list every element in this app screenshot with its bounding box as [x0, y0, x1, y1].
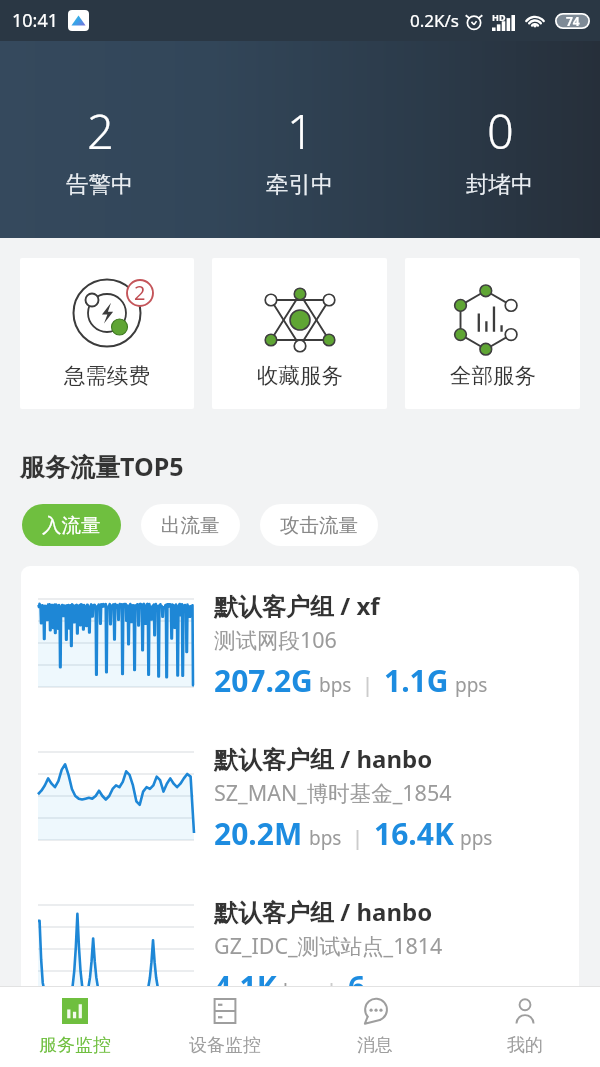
staticText: 4.1K	[214, 966, 277, 1007]
staticText: 默认客户组 / hanbo	[214, 742, 433, 775]
button[interactable]: 服务监控	[0, 987, 150, 1067]
button[interactable]: 消息	[300, 987, 450, 1067]
button[interactable]: 收藏服务	[212, 258, 387, 409]
staticText: |	[362, 671, 374, 698]
staticText: 默认客户组 / hanbo	[214, 895, 433, 928]
staticText: 6	[348, 966, 366, 1007]
staticText: |	[326, 977, 338, 1004]
staticText: 测试网段106	[214, 625, 337, 654]
staticText: 10:41	[12, 8, 59, 33]
staticText: 2	[134, 279, 146, 306]
staticText: 全部服务	[450, 362, 536, 389]
staticText: HD	[492, 11, 506, 23]
staticText: bps	[309, 825, 342, 851]
button[interactable]: 默认客户组 / xf	[21, 566, 579, 719]
staticText: 出流量	[161, 513, 220, 538]
button[interactable]: 攻击流量	[260, 504, 378, 546]
staticText: 0.2K/s	[410, 9, 459, 32]
staticText: 设备监控	[189, 1034, 261, 1057]
staticText: bps	[319, 672, 352, 698]
button[interactable]: 设备监控	[150, 987, 300, 1067]
staticText: 我的	[507, 1034, 543, 1057]
staticText: 封堵中	[466, 170, 534, 198]
staticText: 告警中	[66, 170, 134, 198]
staticText: 默认客户组 / xf	[214, 589, 380, 622]
staticText: pps	[372, 978, 405, 1004]
staticText: 服务流量TOP5	[20, 449, 184, 483]
button[interactable]: 入流量	[22, 504, 121, 546]
button[interactable]: 2	[0, 41, 200, 238]
staticText: 16.4K	[374, 813, 454, 854]
button[interactable]: 2	[20, 258, 194, 409]
staticText: 急需续费	[64, 362, 150, 389]
staticText: 入流量	[42, 513, 101, 538]
button[interactable]: 默认客户组 / hanbo	[21, 872, 579, 1025]
staticText: 0	[487, 99, 514, 163]
staticText: 攻击流量	[280, 513, 358, 538]
button[interactable]: 0	[400, 41, 600, 238]
staticText: pps	[460, 825, 493, 851]
staticText: 74	[566, 13, 580, 29]
staticText: 1	[287, 99, 314, 163]
button[interactable]: 全部服务	[405, 258, 580, 409]
staticText: 1.1G	[384, 660, 449, 701]
staticText: |	[352, 824, 364, 851]
button[interactable]: 出流量	[141, 504, 240, 546]
button[interactable]: 我的	[450, 987, 600, 1067]
staticText: 收藏服务	[257, 362, 343, 389]
staticText: SZ_MAN_博时基金_1854	[214, 778, 452, 807]
staticText: pps	[455, 672, 488, 698]
staticText: 20.2M	[214, 813, 303, 854]
staticText: 207.2G	[214, 660, 313, 701]
button[interactable]: 1	[200, 41, 400, 238]
staticText: 服务监控	[39, 1034, 111, 1057]
staticText: GZ_IDC_测试站点_1814	[214, 931, 443, 960]
staticText: 牵引中	[266, 170, 334, 198]
staticText: bps	[283, 978, 316, 1004]
button[interactable]: 默认客户组 / hanbo	[21, 719, 579, 872]
staticText: 2	[87, 99, 114, 163]
staticText: 消息	[357, 1034, 393, 1057]
